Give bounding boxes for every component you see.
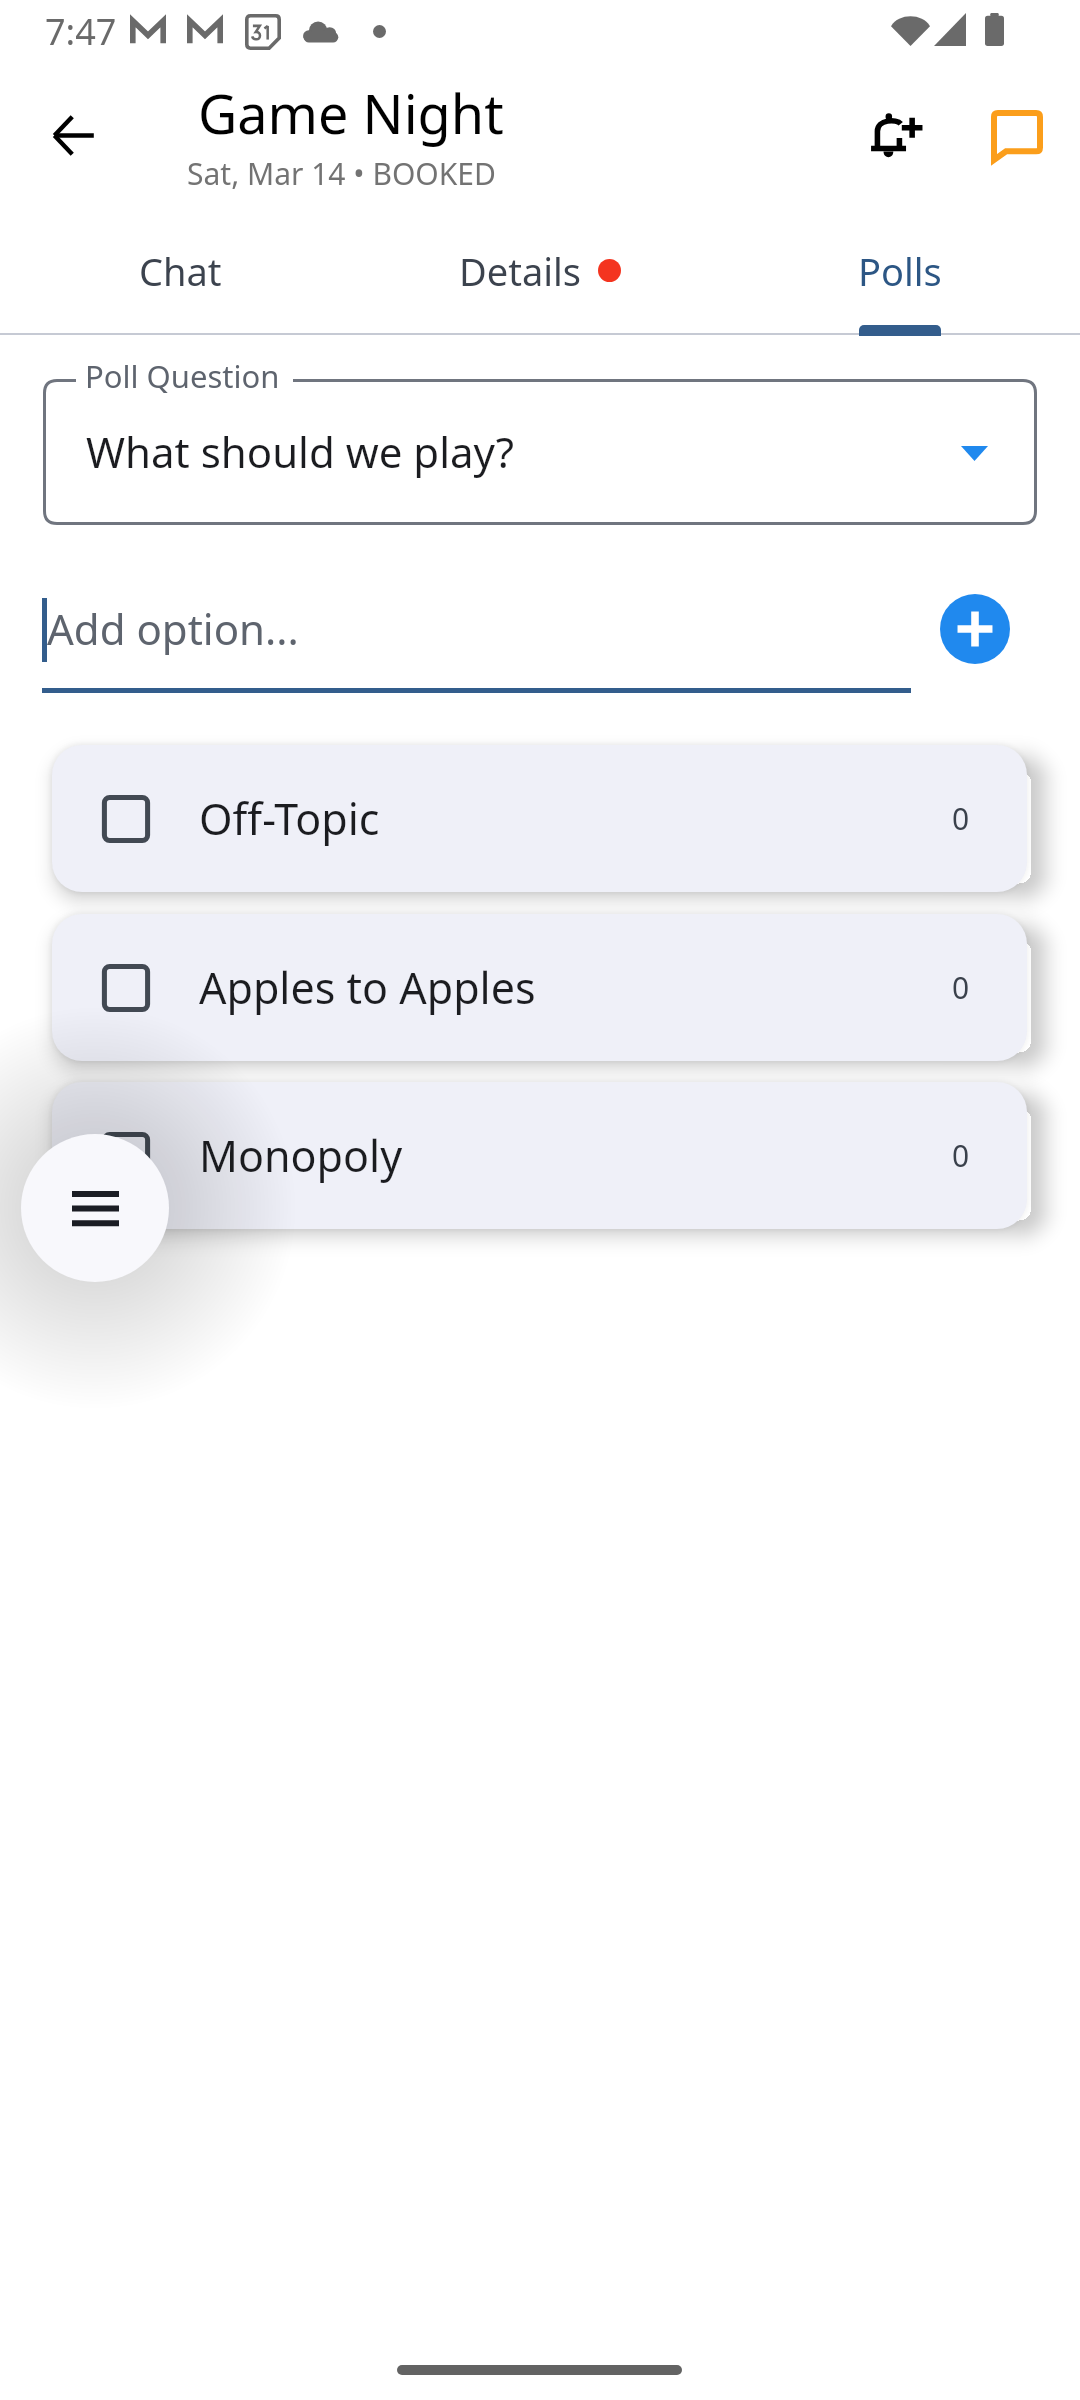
button[interactable]: Add notification	[850, 90, 942, 182]
staticText: Game Night	[198, 76, 504, 150]
staticText: What should we play?	[86, 423, 515, 480]
staticText: Monopoly	[199, 1126, 952, 1185]
staticText: Sat, Mar 14 • BOOKED	[187, 153, 496, 194]
staticText: 0	[952, 1135, 970, 1176]
button[interactable]: What should we play?	[43, 379, 1037, 525]
staticText: Details	[459, 245, 582, 297]
button[interactable]: Chat	[0, 220, 360, 328]
staticText: Add option...	[47, 600, 299, 657]
staticText: 7:47	[45, 7, 117, 56]
button[interactable]: Polls	[720, 220, 1080, 328]
button[interactable]: Add option	[940, 594, 1010, 664]
button[interactable]: Back	[26, 87, 122, 183]
staticText: Off-Topic	[199, 789, 952, 848]
staticText: Polls	[858, 245, 942, 297]
button[interactable]: Monopoly	[52, 1082, 1027, 1229]
staticText: Apples to Apples	[199, 958, 952, 1017]
staticText: 0	[952, 798, 970, 839]
button[interactable]: Menu	[21, 1134, 169, 1282]
button[interactable]: Chat	[971, 90, 1063, 182]
staticText: Chat	[139, 245, 222, 297]
staticText: Poll Question	[85, 355, 280, 397]
button[interactable]: Details	[360, 220, 720, 328]
button[interactable]: Apples to Apples	[52, 914, 1027, 1061]
staticText: 0	[952, 967, 970, 1008]
button[interactable]: Off-Topic	[52, 745, 1027, 892]
